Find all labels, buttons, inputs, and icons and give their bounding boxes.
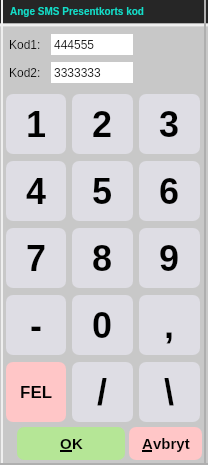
staticText: 5 xyxy=(92,171,113,211)
button[interactable]: Key 3 xyxy=(139,94,200,154)
staticText: O xyxy=(60,435,72,452)
button[interactable]: O xyxy=(17,427,125,460)
staticText: 2 xyxy=(92,104,113,144)
staticText: 3 xyxy=(159,104,180,144)
button[interactable]: Key 6 xyxy=(139,161,200,221)
button[interactable]: 444555 xyxy=(51,34,133,55)
staticText: 4 xyxy=(26,171,47,211)
staticText: 3333333 xyxy=(54,66,101,79)
staticText: 1 xyxy=(26,104,47,144)
staticText: Ange SMS Presentkorts kod xyxy=(10,6,144,17)
staticText: \ xyxy=(164,372,175,412)
button[interactable]: Key / xyxy=(72,362,133,422)
button[interactable]: Key 5 xyxy=(72,161,133,221)
staticText: 8 xyxy=(92,238,113,278)
button[interactable]: Key 7 xyxy=(6,228,66,288)
staticText: , xyxy=(164,305,175,345)
staticText: 6 xyxy=(159,171,180,211)
staticText: FEL xyxy=(20,383,53,402)
button[interactable]: Key , xyxy=(139,295,200,355)
button[interactable]: Key 4 xyxy=(6,161,66,221)
button[interactable]: A xyxy=(129,427,202,460)
staticText: vbryt xyxy=(153,435,190,452)
staticText: - xyxy=(30,305,42,345)
button[interactable]: Key 0 xyxy=(72,295,133,355)
button[interactable]: Key 8 xyxy=(72,228,133,288)
staticText: 9 xyxy=(159,238,180,278)
staticText: Kod2: xyxy=(9,66,41,79)
button[interactable]: Key FEL xyxy=(6,362,66,422)
staticText: 444555 xyxy=(54,38,95,51)
staticText: / xyxy=(97,372,108,412)
button[interactable]: Key \ xyxy=(139,362,200,422)
staticText: Kod1: xyxy=(9,38,41,51)
button[interactable]: 3333333 xyxy=(51,62,133,83)
staticText: 7 xyxy=(26,238,47,278)
button[interactable]: Key 2 xyxy=(72,94,133,154)
button[interactable]: Key 1 xyxy=(6,94,66,154)
button[interactable]: Key - xyxy=(6,295,66,355)
staticText: A xyxy=(142,435,153,452)
staticText: 0 xyxy=(92,305,113,345)
staticText: K xyxy=(72,435,83,452)
button[interactable]: Key 9 xyxy=(139,228,200,288)
